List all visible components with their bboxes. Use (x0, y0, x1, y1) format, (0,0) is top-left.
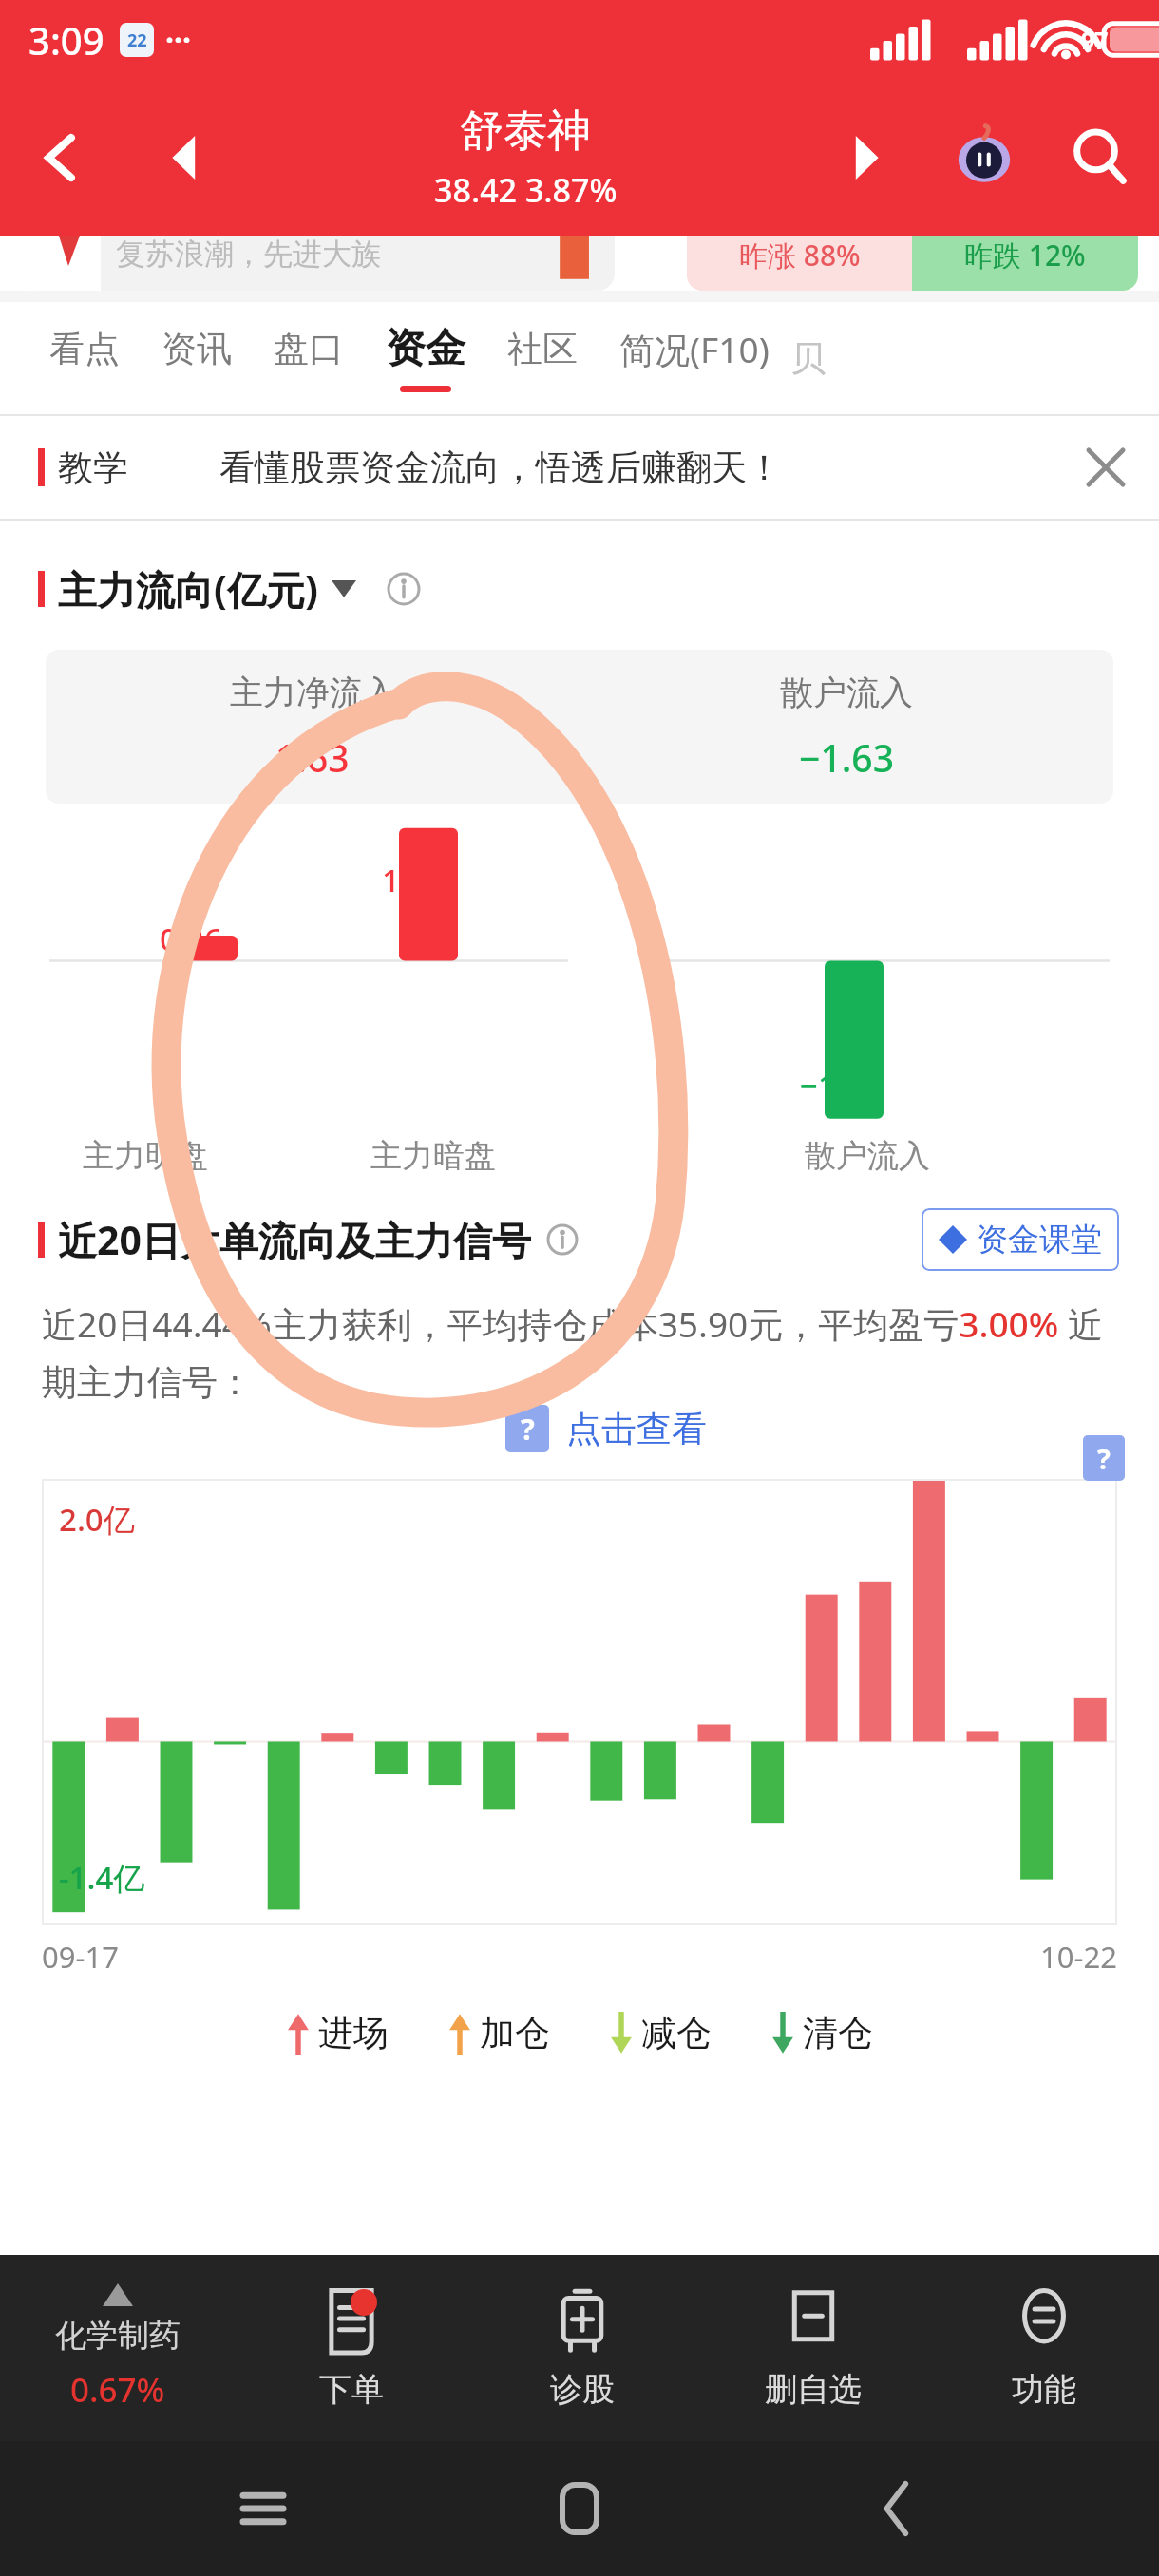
staticText: 资讯 (161, 327, 232, 371)
button[interactable]: Help (505, 1405, 549, 1452)
staticText: ? (1097, 1440, 1111, 1477)
staticText: 3:09 (28, 14, 104, 66)
button[interactable]: 资讯 (141, 302, 253, 414)
button[interactable]: Back (843, 2455, 949, 2562)
button[interactable]: 进场 (286, 2011, 389, 2055)
button[interactable]: Search (1041, 80, 1159, 236)
button[interactable]: 散户流入 (579, 650, 1113, 804)
staticText: 10-22 (1040, 1937, 1117, 1977)
button[interactable]: 教学 (0, 416, 1159, 519)
staticText: 主力明盘 (83, 1136, 208, 1176)
staticText: 舒泰神 (460, 104, 591, 159)
staticText: 下单 (319, 2369, 384, 2410)
staticText: 0.26 (160, 918, 222, 960)
staticText: 删自选 (765, 2369, 862, 2410)
button[interactable]: 化学制药 (0, 2283, 236, 2413)
button[interactable]: Next stock (804, 80, 927, 236)
button[interactable]: 看点 (28, 302, 141, 414)
staticText: 清仓 (803, 2011, 873, 2055)
button[interactable]: Previous stock (123, 80, 247, 236)
staticText: 主力暗盘 (370, 1136, 496, 1176)
staticText: -1.4亿 (59, 1856, 145, 1899)
staticText: 看懂股票资金流向，悟透后赚翻天！ (219, 445, 782, 490)
staticText: 点击查看 (566, 1407, 707, 1451)
button[interactable]: 功能 (928, 2283, 1159, 2414)
staticText: ? (521, 1409, 535, 1449)
button[interactable]: Chart help (1083, 1435, 1125, 1481)
staticText: 散户流入 (805, 1136, 930, 1176)
staticText: 进场 (318, 2011, 389, 2055)
button[interactable]: 点击查看 (566, 1407, 707, 1451)
staticText: 诊股 (550, 2369, 615, 2410)
button[interactable]: 下单 (236, 2283, 466, 2414)
staticText: 97 (1081, 24, 1109, 56)
staticText: 1.37 (382, 859, 445, 901)
button[interactable]: 舒泰神 (247, 104, 804, 212)
staticText: 主力流向(亿元) (58, 562, 318, 616)
staticText: 看点 (49, 327, 120, 371)
button[interactable]: Recents (210, 2455, 316, 2562)
staticText: 盘口 (274, 327, 344, 371)
button[interactable]: 主力流向(亿元) (0, 562, 421, 616)
staticText: 昨跌 12% (964, 236, 1086, 275)
button[interactable]: 删自选 (697, 2283, 928, 2414)
staticText: ··· (165, 19, 191, 61)
staticText: 简况(F10) (619, 325, 769, 373)
button[interactable]: 复苏浪潮，先进大族 (21, 236, 615, 291)
staticText: 2.0亿 (59, 1498, 135, 1541)
button[interactable]: 减仓 (609, 2011, 712, 2055)
staticText: 近20日44.44%主力获利，平均持仓成本35.90元，平均盈亏3.00% 近期… (42, 1299, 1117, 1405)
staticText: 近20日大单流向及主力信号 (58, 1213, 531, 1266)
staticText: 散户流入 (780, 672, 913, 713)
button[interactable]: 加仓 (447, 2011, 550, 2055)
staticText: 22 (127, 28, 147, 52)
staticText: −1.63 (800, 1064, 881, 1107)
staticText: 昨涨 88% (739, 236, 861, 275)
staticText: 化学制药 (55, 2316, 180, 2356)
button[interactable]: 主力净流入 (46, 650, 579, 804)
button[interactable]: 盘口 (253, 302, 365, 414)
staticText: 社区 (507, 327, 578, 371)
button[interactable]: 资金 (365, 302, 486, 414)
button[interactable]: 昨涨 88% (687, 236, 912, 291)
staticText: 复苏浪潮，先进大族 (116, 236, 381, 273)
button[interactable]: AI assistant (927, 80, 1041, 236)
staticText: 资金课堂 (977, 1220, 1102, 1260)
button[interactable]: 社区 (486, 302, 598, 414)
button[interactable]: 清仓 (770, 2011, 873, 2055)
staticText: −1.63 (799, 732, 894, 783)
staticText: 贝 (790, 336, 826, 381)
staticText: 0.67% (70, 2367, 165, 2413)
staticText: 教学 (58, 445, 128, 490)
staticText: 38.42 3.87% (434, 168, 617, 212)
staticText: 09-17 (42, 1937, 119, 1977)
button[interactable]: Close banner (1062, 424, 1149, 511)
button[interactable]: 资金课堂 (921, 1208, 1119, 1271)
staticText: 主力净流入 (230, 672, 396, 713)
button[interactable]: 昨跌 12% (912, 236, 1138, 291)
button[interactable]: 诊股 (466, 2283, 697, 2414)
button[interactable]: 简况(F10) (598, 302, 790, 414)
button[interactable]: Back (0, 80, 123, 236)
staticText: 减仓 (641, 2011, 712, 2055)
staticText: 功能 (1012, 2369, 1076, 2410)
button[interactable]: Home (526, 2455, 633, 2562)
button[interactable]: 贝 (790, 336, 826, 381)
staticText: 1.63 (275, 732, 350, 783)
staticText: 加仓 (480, 2011, 550, 2055)
staticText: 资金 (386, 324, 465, 374)
